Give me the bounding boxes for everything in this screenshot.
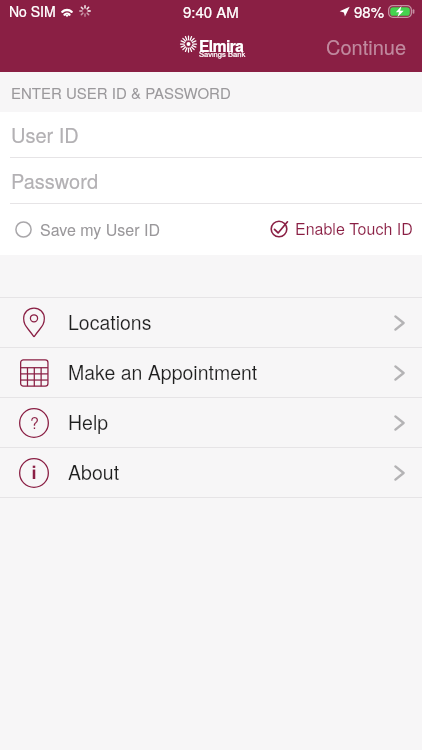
staticText: 9:40 AM: [183, 1, 239, 22]
staticText: Elmira: [199, 35, 244, 57]
button[interactable]: Enable Touch ID: [262, 211, 422, 248]
staticText: Locations: [68, 308, 152, 336]
button[interactable]: Make an Appointment: [0, 348, 422, 397]
button[interactable]: Locations: [0, 298, 422, 347]
staticText: Make an Appointment: [68, 358, 258, 386]
staticText: User ID: [11, 120, 79, 149]
staticText: Savings Bank: [199, 48, 246, 59]
staticText: No SIM: [9, 1, 56, 21]
staticText: Password: [11, 166, 98, 195]
button[interactable]: Save my User ID: [0, 211, 168, 248]
staticText: ?: [30, 411, 39, 434]
button[interactable]: About: [0, 448, 422, 497]
staticText: Help: [68, 408, 109, 436]
staticText: ENTER USER ID & PASSWORD: [11, 82, 231, 103]
button[interactable]: ?: [0, 398, 422, 447]
button[interactable]: Password: [0, 158, 422, 203]
staticText: Save my User ID: [40, 218, 160, 241]
staticText: 98%: [354, 1, 385, 22]
button[interactable]: User ID: [0, 112, 422, 157]
staticText: Enable Touch ID: [295, 217, 413, 240]
staticText: About: [68, 458, 120, 486]
staticText: Continue: [326, 32, 407, 61]
button[interactable]: Continue: [318, 29, 415, 64]
